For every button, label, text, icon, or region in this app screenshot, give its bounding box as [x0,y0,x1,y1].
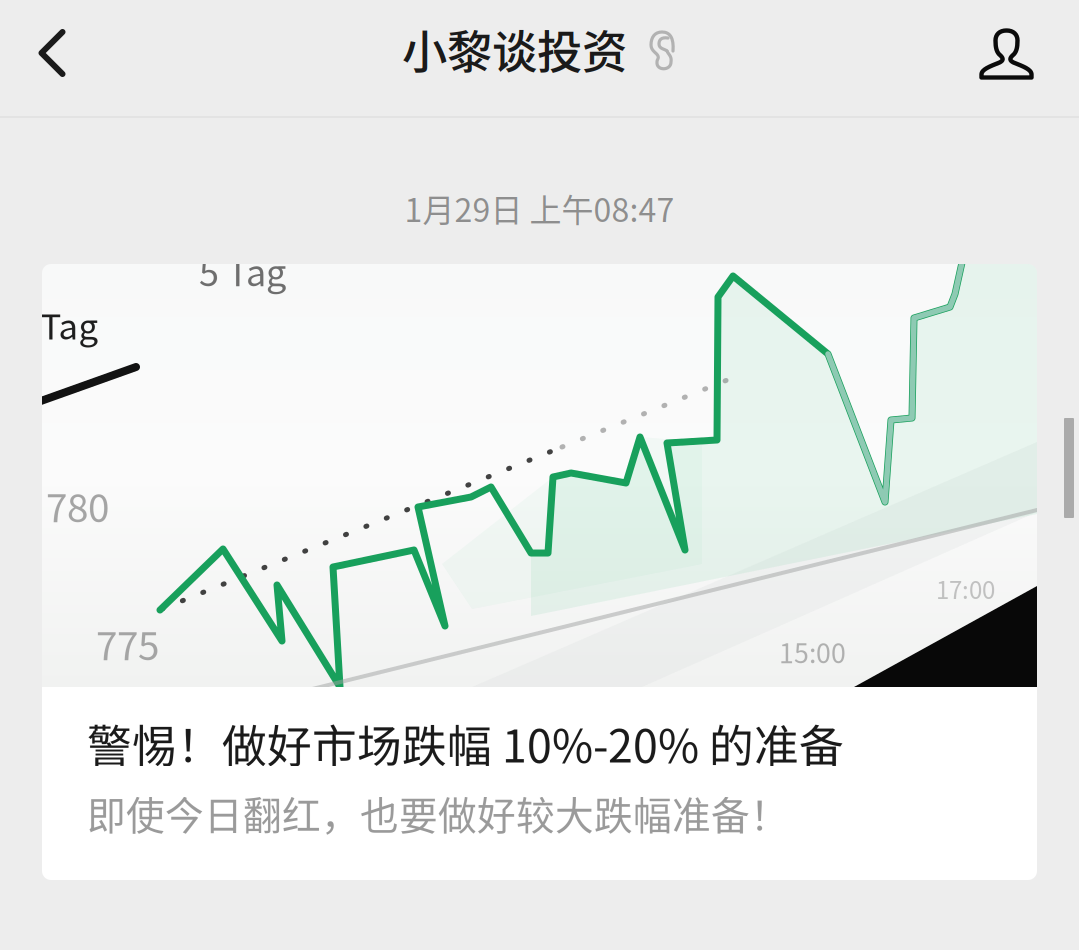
staticText: 15:00 [779,632,846,671]
staticText: 小黎谈投资 [402,16,627,82]
staticText: 即使今日翻红，也要做好较大跌幅准备！ [87,785,789,841]
staticText: 警惕！做好市场跌幅 10%-20% 的准备 [87,711,844,775]
button[interactable]: Back [0,0,104,118]
staticText: Tag [40,299,98,350]
button[interactable]: 5 Tag [42,264,1037,880]
staticText: 1月29日 上午08:47 [404,185,674,231]
staticText: 780 [46,477,109,533]
staticText: 5 Tag [199,244,286,296]
staticText: 775 [96,615,159,671]
button[interactable]: Contact card [934,0,1079,118]
staticText: 17:00 [936,571,995,606]
